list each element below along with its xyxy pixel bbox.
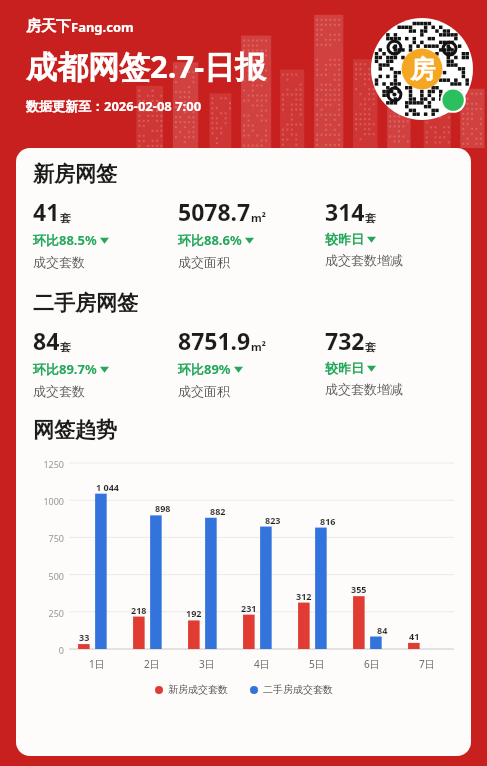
staticText: 环比88.5% [33,231,97,249]
button[interactable]: 5078.7 [178,196,325,270]
staticText: 898 [155,502,171,514]
staticText: 成交套数 [33,383,85,399]
staticText: 312 [296,590,312,602]
staticText: 2日 [144,657,160,671]
staticText: 较昨日 [325,231,364,247]
staticText: 816 [320,515,336,527]
button[interactable]: 新房成交套数 [155,683,228,696]
staticText: 新房成交套数 [168,683,228,696]
staticText: 成交套数 [33,254,85,270]
staticText: 新房网签 [33,161,117,187]
staticText: 5日 [309,657,325,671]
staticText: 环比89% [178,360,231,378]
staticText: 6日 [364,657,380,671]
staticText: 二手房成交套数 [263,683,333,696]
staticText: 成交面积 [178,383,230,399]
staticText: 355 [351,583,367,595]
staticText: 500 [33,570,64,582]
staticText: Fang.com [71,18,134,36]
staticText: 33 [79,631,90,643]
button[interactable]: 扫描二维码 [371,18,473,120]
staticText: 较昨日 [325,360,364,376]
staticText: 1 044 [96,481,119,493]
staticText: 成交面积 [178,254,230,270]
staticText: m² [251,210,266,225]
staticText: 732 [325,325,365,356]
staticText: 成都网签2.7-日报 [26,45,267,87]
staticText: 41 [409,630,420,642]
staticText: 套 [60,340,71,354]
staticText: 1000 [33,495,64,507]
staticText: 套 [60,211,71,225]
staticText: 41 [33,196,60,227]
staticText: 数据更新至：2026-02-08 7:00 [26,97,202,115]
button[interactable]: 732 [325,325,454,397]
staticText: 750 [33,532,64,544]
staticText: 房 [410,54,435,85]
button[interactable]: 314 [325,196,454,268]
staticText: 网签趋势 [33,417,117,443]
staticText: 成交套数增减 [325,252,403,268]
staticText: 314 [325,196,365,227]
staticText: 二手房网签 [33,290,138,316]
staticText: 882 [210,505,226,517]
staticText: 成交套数增减 [325,381,403,397]
staticText: 环比88.6% [178,231,242,249]
staticText: 套 [365,340,376,354]
staticText: 1250 [33,458,64,470]
staticText: 房天下 [26,17,71,36]
staticText: 1日 [89,657,105,671]
button[interactable]: 8751.9 [178,325,325,399]
staticText: 250 [33,607,64,619]
staticText: 84 [377,624,388,636]
staticText: 7日 [419,657,435,671]
button[interactable]: 二手房成交套数 [250,683,333,696]
staticText: 5078.7 [178,196,251,227]
staticText: 84 [33,325,60,356]
button[interactable]: 41 [33,196,178,270]
staticText: 环比89.7% [33,360,97,378]
staticText: 套 [365,211,376,225]
button[interactable]: 84 [33,325,178,399]
staticText: m² [251,339,266,354]
staticText: 0 [33,644,64,656]
staticText: 3日 [199,657,215,671]
staticText: 4日 [254,657,270,671]
staticText: 823 [265,514,281,526]
staticText: 8751.9 [178,325,251,356]
staticText: 231 [241,602,257,614]
staticText: 218 [131,604,147,616]
staticText: 192 [186,607,202,619]
